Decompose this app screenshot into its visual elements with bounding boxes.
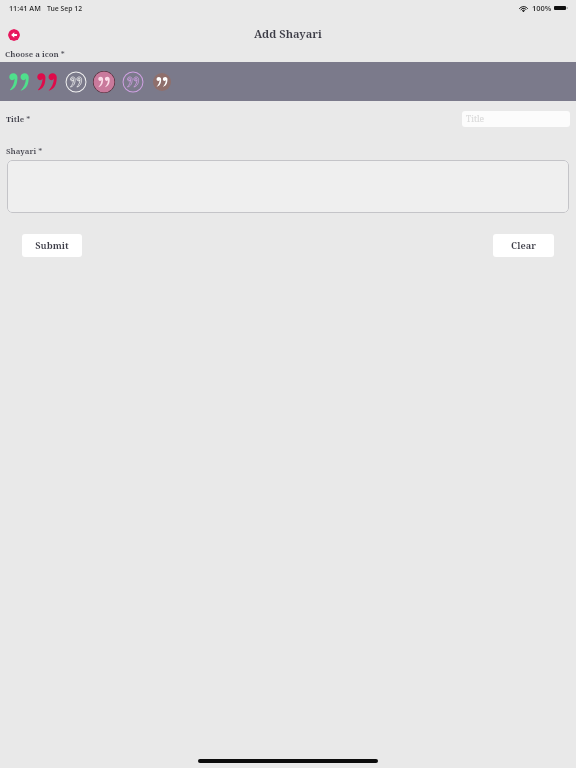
staticText: Tue Sep 12: [47, 4, 83, 13]
button[interactable]: Quote style 2: [35, 70, 59, 94]
button[interactable]: Title: [462, 111, 570, 127]
button[interactable]: [7, 160, 569, 213]
button[interactable]: Quote style 1: [7, 70, 31, 94]
button[interactable]: Back: [8, 29, 20, 41]
staticText: 11:41 AM: [9, 3, 41, 13]
staticText: Title: [466, 113, 485, 125]
button[interactable]: Quote style 4: [92, 70, 116, 94]
button[interactable]: Quote style 5: [121, 70, 145, 94]
staticText: Add Shayari: [0, 26, 576, 41]
button[interactable]: Clear: [493, 234, 554, 257]
staticText: Title *: [6, 114, 31, 125]
staticText: 100%: [532, 3, 552, 13]
staticText: Shayari *: [6, 146, 43, 157]
button[interactable]: Submit: [22, 234, 82, 257]
staticText: Choose a icon *: [5, 49, 65, 60]
button[interactable]: Quote style 6: [150, 70, 174, 94]
button[interactable]: Quote style 3: [64, 70, 88, 94]
staticText: Clear: [511, 239, 536, 252]
staticText: Submit: [35, 239, 69, 252]
